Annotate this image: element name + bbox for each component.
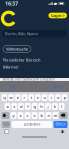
staticText: t xyxy=(31,95,32,100)
staticText: Adresse oder Suchbegriff eingeben xyxy=(3,78,55,81)
staticText: a xyxy=(6,104,8,109)
button[interactable]: Shift xyxy=(1,112,9,119)
staticText: h xyxy=(40,104,42,109)
staticText: 123 xyxy=(3,123,9,126)
button[interactable]: e xyxy=(15,94,21,101)
button[interactable]: Persönlicher Bereich xyxy=(3,57,40,62)
button[interactable]: g xyxy=(32,103,37,110)
staticText: Informer xyxy=(3,64,19,69)
button[interactable]: v xyxy=(31,112,37,119)
button[interactable]: o xyxy=(55,94,61,101)
staticText: c xyxy=(26,113,28,118)
staticText: r xyxy=(23,95,25,100)
button[interactable]: 123 xyxy=(1,121,10,128)
button[interactable]: w xyxy=(8,94,14,101)
staticText: v xyxy=(33,113,35,118)
staticText: Berlin xyxy=(52,84,63,89)
staticText: “be” xyxy=(8,84,14,89)
button[interactable]: n xyxy=(45,112,51,119)
staticText: b xyxy=(40,113,42,118)
staticText: i xyxy=(51,95,52,100)
button[interactable]: t xyxy=(28,94,34,101)
button[interactable]: Volltextsuche xyxy=(3,45,31,52)
button[interactable]: h xyxy=(38,103,44,110)
button[interactable]: Dictate xyxy=(60,129,65,134)
button[interactable]: Berlin, Köln, Name xyxy=(2,30,67,37)
button[interactable]: j xyxy=(45,103,51,110)
button[interactable]: i xyxy=(48,94,54,101)
button[interactable]: f xyxy=(25,103,31,110)
staticText: m xyxy=(53,113,57,118)
staticText: n xyxy=(47,113,49,118)
staticText: Login xyxy=(51,13,62,18)
staticText: Berlin, Köln, Name xyxy=(5,31,38,36)
staticText: k xyxy=(54,104,56,109)
button[interactable]: a xyxy=(4,103,10,110)
staticText: 16:37 xyxy=(5,0,18,7)
button[interactable]: k xyxy=(52,103,58,110)
button[interactable]: p xyxy=(62,94,67,101)
staticText: Leerzeichen xyxy=(23,123,40,126)
staticText: Persönlicher Bereich xyxy=(3,57,40,62)
staticText: z xyxy=(37,95,39,100)
staticText: d xyxy=(20,104,22,109)
staticText: j xyxy=(48,104,49,109)
button[interactable]: r xyxy=(22,94,27,101)
staticText: q xyxy=(3,95,5,100)
staticText: g xyxy=(33,104,35,109)
button[interactable]: b xyxy=(38,112,44,119)
button[interactable]: u xyxy=(42,94,47,101)
button[interactable]: l xyxy=(59,103,64,110)
button[interactable]: Emoji xyxy=(4,129,9,134)
button[interactable]: q xyxy=(1,94,7,101)
button[interactable]: d xyxy=(18,103,24,110)
staticText: l xyxy=(61,104,62,109)
button[interactable]: Leerzeichen xyxy=(11,121,52,128)
staticText: e xyxy=(17,95,19,100)
button[interactable]: x xyxy=(17,112,23,119)
staticText: f xyxy=(27,104,28,109)
button[interactable]: Öffnen xyxy=(53,121,67,128)
button[interactable]: Delete xyxy=(59,112,67,119)
staticText: w xyxy=(9,95,12,100)
staticText: x xyxy=(19,113,21,118)
staticText: Öffnen xyxy=(55,123,65,126)
button[interactable]: Login xyxy=(48,13,67,18)
staticText: p xyxy=(64,95,66,100)
button[interactable]: m xyxy=(52,112,58,119)
staticText: u xyxy=(44,95,46,100)
button[interactable]: Informer xyxy=(3,64,19,69)
button[interactable]: z xyxy=(35,94,41,101)
staticText: o xyxy=(57,95,59,100)
staticText: s xyxy=(13,104,15,109)
button[interactable]: y xyxy=(10,112,16,119)
staticText: y xyxy=(12,113,14,118)
button[interactable]: c xyxy=(24,112,30,119)
button[interactable]: s xyxy=(11,103,17,110)
staticText: Volltextsuche xyxy=(6,46,28,51)
